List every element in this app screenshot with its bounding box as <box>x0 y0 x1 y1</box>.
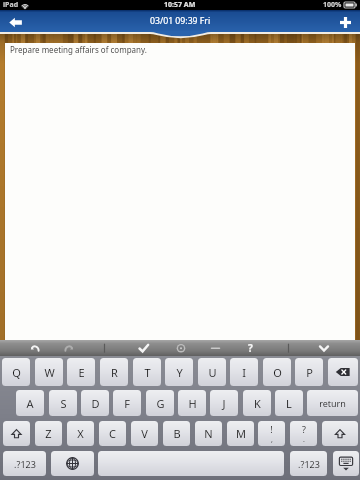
button[interactable]: Timestamp <box>156 340 207 356</box>
button[interactable]: Q <box>2 358 30 386</box>
staticText: Y <box>176 365 183 380</box>
staticText: .?123 <box>298 458 320 470</box>
button[interactable]: I <box>230 358 258 386</box>
button[interactable]: O <box>263 358 291 386</box>
staticText: , <box>271 435 273 445</box>
button[interactable]: U <box>198 358 226 386</box>
button[interactable]: A <box>16 390 44 416</box>
button[interactable]: P <box>295 358 323 386</box>
staticText: I <box>242 365 246 380</box>
button[interactable]: .?123 <box>290 451 327 476</box>
button[interactable]: D <box>81 390 109 416</box>
staticText: P <box>306 365 313 380</box>
staticText: J <box>222 396 226 411</box>
staticText: 10:57 AM <box>164 0 196 10</box>
button[interactable]: ? <box>290 421 317 446</box>
staticText: O <box>273 365 282 380</box>
button[interactable]: Redo <box>52 340 104 356</box>
staticText: ! <box>270 423 273 435</box>
staticText: .?123 <box>14 458 36 470</box>
staticText: N <box>204 426 213 441</box>
button[interactable]: Z <box>35 421 62 446</box>
staticText: X <box>77 426 84 441</box>
staticText: 03/01 09:39 Fri <box>150 15 211 27</box>
staticText: A <box>26 396 34 411</box>
button[interactable]: Next keyboard <box>51 451 94 476</box>
staticText: E <box>78 365 85 380</box>
button[interactable]: Hide keyboard <box>333 451 359 476</box>
staticText: Prepare meeting affairs of company. <box>10 44 147 55</box>
button[interactable]: T <box>133 358 161 386</box>
staticText: V <box>141 426 148 441</box>
button[interactable]: Undo <box>0 340 52 356</box>
button[interactable]: N <box>195 421 222 446</box>
button[interactable]: E <box>67 358 95 386</box>
button[interactable]: return <box>307 390 358 416</box>
button[interactable]: Shift <box>322 421 358 446</box>
button[interactable]: V <box>131 421 158 446</box>
button[interactable]: ! <box>258 421 285 446</box>
staticText: C <box>109 426 116 441</box>
button[interactable]: L <box>275 390 303 416</box>
staticText: Q <box>12 365 21 380</box>
staticText: B <box>173 426 181 441</box>
staticText: G <box>156 396 165 411</box>
button[interactable]: F <box>113 390 141 416</box>
staticText: M <box>236 426 246 441</box>
staticText: T <box>144 365 151 380</box>
button[interactable]: S <box>49 390 77 416</box>
button[interactable]: Hide keyboard <box>309 340 360 356</box>
button[interactable]: Shift <box>3 421 30 446</box>
staticText: L <box>286 396 292 411</box>
staticText: W <box>44 365 55 380</box>
button[interactable]: B <box>163 421 190 446</box>
button[interactable]: Space <box>98 451 284 476</box>
button[interactable]: R <box>100 358 128 386</box>
staticText: ? <box>248 341 253 355</box>
staticText: Z <box>45 426 52 441</box>
button[interactable]: Backspace <box>328 358 358 386</box>
staticText: . <box>303 435 305 445</box>
staticText: S <box>60 396 67 411</box>
staticText: ? <box>302 423 306 435</box>
button[interactable]: X <box>67 421 94 446</box>
button[interactable]: Y <box>165 358 193 386</box>
staticText: D <box>91 396 100 411</box>
button[interactable]: Done <box>104 340 156 356</box>
button[interactable]: G <box>146 390 174 416</box>
button[interactable]: J <box>210 390 238 416</box>
staticText: K <box>254 396 261 411</box>
button[interactable]: C <box>99 421 126 446</box>
button[interactable]: W <box>35 358 63 386</box>
button[interactable]: Help <box>258 340 309 356</box>
button[interactable]: M <box>227 421 254 446</box>
staticText: return <box>319 397 346 409</box>
staticText: iPad <box>3 0 19 10</box>
staticText: U <box>208 365 217 380</box>
staticText: F <box>124 396 130 411</box>
button[interactable]: .?123 <box>3 451 46 476</box>
button[interactable]: H <box>178 390 206 416</box>
button[interactable]: Back <box>5 12 25 32</box>
staticText: 100% <box>323 0 342 10</box>
staticText: H <box>188 396 197 411</box>
button[interactable]: Add <box>335 12 355 32</box>
staticText: R <box>111 365 118 380</box>
button[interactable]: Dash <box>207 340 258 356</box>
button[interactable]: K <box>243 390 271 416</box>
